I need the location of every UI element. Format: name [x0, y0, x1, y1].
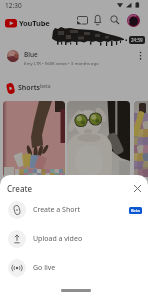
button[interactable]: Upload a video — [4, 228, 145, 250]
button[interactable]: Create a Short — [4, 199, 145, 221]
staticText: Upload a video — [33, 234, 83, 244]
staticText: 24:39 — [131, 37, 143, 43]
staticText: Create — [7, 183, 33, 194]
button[interactable] — [67, 101, 130, 177]
staticText: Emy LTR • 560K views • 3 months ago — [24, 60, 99, 66]
button[interactable] — [74, 13, 89, 28]
staticText: beta — [40, 83, 51, 90]
button[interactable] — [0, 48, 134, 72]
button[interactable] — [3, 101, 65, 177]
staticText: Create a Short — [33, 205, 80, 215]
staticText: 12:30 — [5, 1, 22, 10]
button[interactable] — [134, 101, 148, 177]
staticText: Go live — [33, 263, 56, 273]
button[interactable]: Go live — [4, 257, 145, 279]
staticText: Blue — [24, 50, 38, 59]
button[interactable] — [91, 13, 106, 28]
button[interactable] — [131, 182, 144, 195]
button[interactable] — [108, 13, 123, 28]
button[interactable] — [0, 29, 148, 48]
button[interactable] — [126, 13, 141, 28]
staticText: Shorts — [18, 83, 40, 93]
staticText: YouTube — [19, 18, 50, 28]
staticText: Beta — [131, 208, 140, 213]
button[interactable] — [134, 48, 148, 64]
